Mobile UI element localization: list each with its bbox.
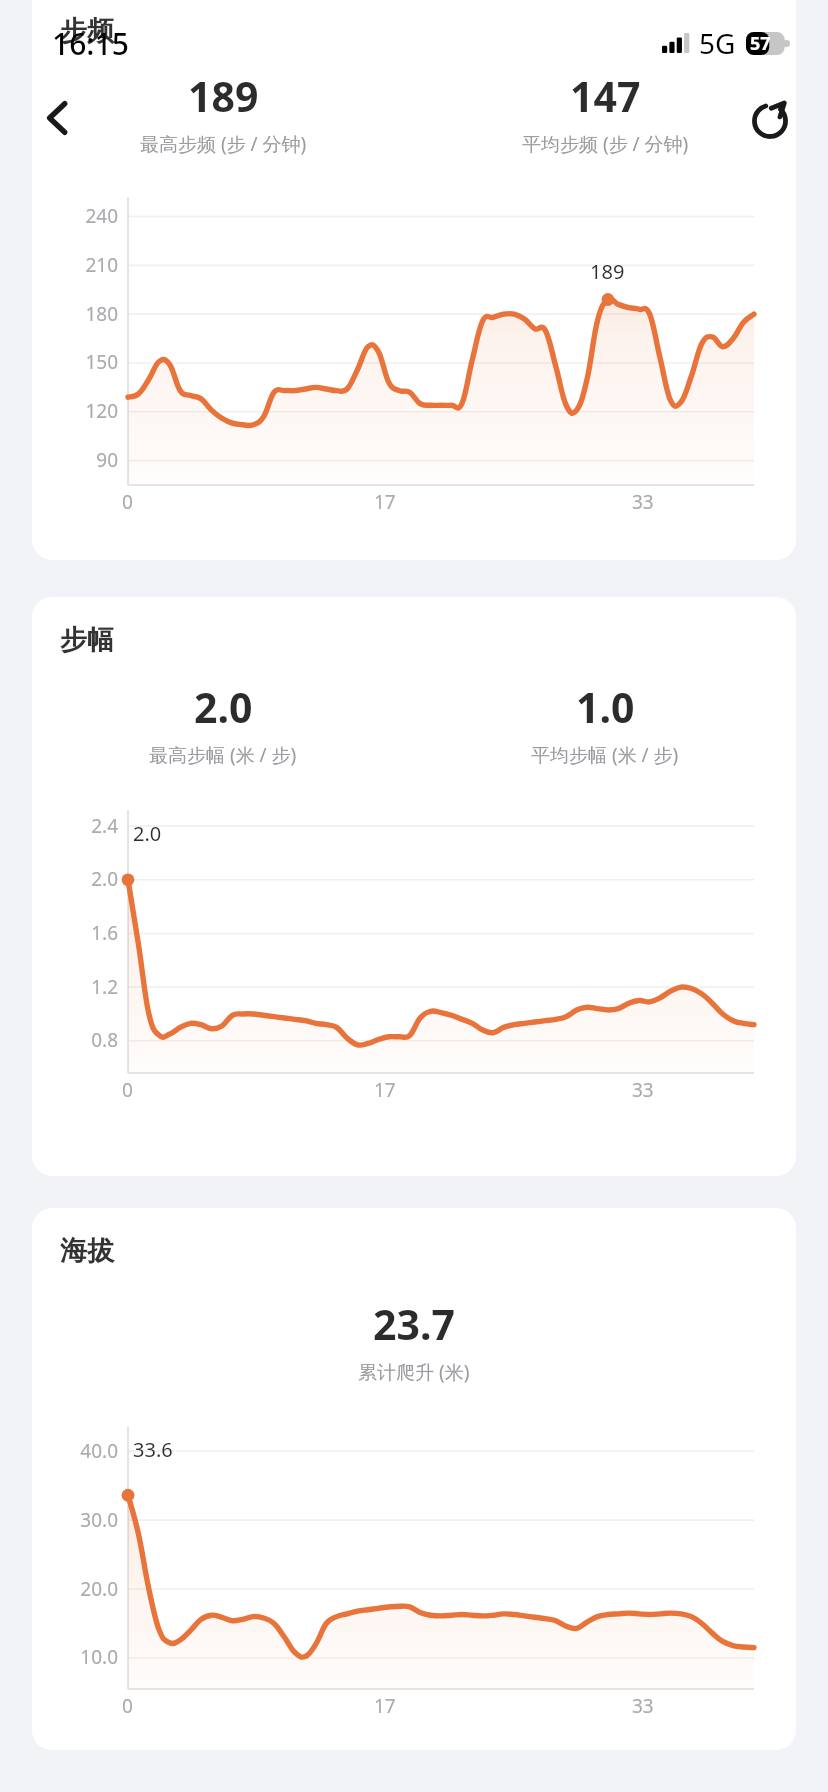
staticText: 150 — [85, 349, 118, 375]
button[interactable]: 步频 — [32, 0, 796, 560]
staticText: 1.6 — [91, 920, 118, 946]
staticText: 189 — [188, 68, 259, 124]
staticText: 40.0 — [80, 1438, 118, 1464]
button[interactable]: Back — [16, 76, 100, 160]
staticText: 240 — [85, 203, 118, 229]
staticText: 1.2 — [91, 974, 118, 1000]
staticText: 17 — [374, 489, 396, 515]
button[interactable]: 海拔 — [32, 1208, 796, 1750]
staticText: 57 — [750, 31, 771, 56]
staticText: 20.0 — [80, 1576, 118, 1602]
staticText: 33 — [632, 489, 654, 515]
staticText: 0 — [122, 1077, 133, 1103]
staticText: 189 — [590, 258, 625, 285]
staticText: 120 — [85, 398, 118, 424]
staticText: 1.0 — [576, 679, 635, 735]
staticText: 累计爬升 (米) — [358, 1359, 470, 1385]
staticText: 2.0 — [194, 679, 253, 735]
staticText: 最高步幅 (米 / 步) — [149, 742, 297, 768]
staticText: 0 — [122, 1693, 133, 1719]
staticText: 16:15 — [52, 23, 129, 64]
staticText: 2.0 — [133, 820, 162, 847]
staticText: 5G — [699, 24, 736, 62]
staticText: 210 — [85, 252, 118, 278]
staticText: 2.0 — [91, 866, 118, 892]
staticText: 180 — [85, 301, 118, 327]
staticText: 0 — [122, 489, 133, 515]
staticText: 步幅 — [60, 623, 114, 657]
staticText: 最高步频 (步 / 分钟) — [140, 131, 307, 157]
staticText: 平均步幅 (米 / 步) — [531, 742, 679, 768]
staticText: 海拔 — [60, 1234, 114, 1268]
staticText: 33 — [632, 1693, 654, 1719]
staticText: 步频 — [60, 14, 114, 48]
staticText: 10.0 — [80, 1644, 118, 1670]
staticText: 33 — [632, 1077, 654, 1103]
staticText: 17 — [374, 1693, 396, 1719]
button[interactable]: 步幅 — [32, 597, 796, 1176]
staticText: 平均步频 (步 / 分钟) — [522, 131, 689, 157]
staticText: 147 — [570, 68, 641, 124]
staticText: 0.8 — [91, 1027, 118, 1053]
button[interactable]: Share — [728, 76, 812, 160]
staticText: 33.6 — [133, 1436, 173, 1463]
staticText: 23.7 — [373, 1296, 455, 1352]
staticText: 30.0 — [80, 1507, 118, 1533]
staticText: 90 — [96, 447, 118, 473]
staticText: 2.4 — [91, 813, 118, 839]
staticText: 17 — [374, 1077, 396, 1103]
